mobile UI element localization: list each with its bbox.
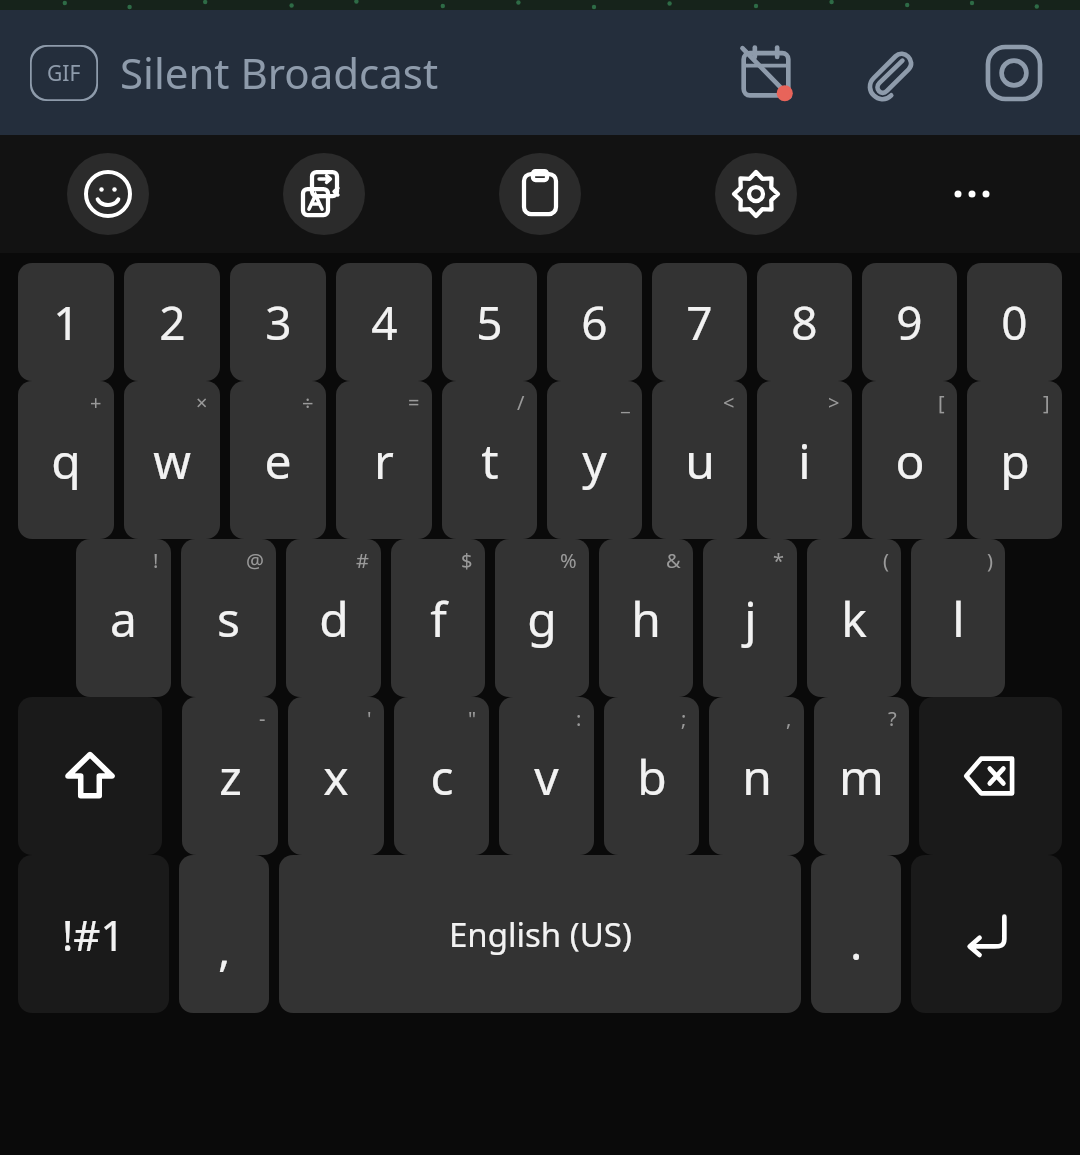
- button[interactable]: Clipboard: [499, 153, 581, 235]
- staticText: i: [798, 428, 811, 493]
- button[interactable]: 5: [442, 263, 537, 381]
- staticText: ,: [218, 917, 231, 980]
- staticText: r: [374, 428, 394, 493]
- button[interactable]: More options: [931, 153, 1013, 235]
- button[interactable]: i: [757, 381, 852, 539]
- staticText: 6: [581, 291, 608, 354]
- staticText: 1: [53, 291, 80, 354]
- button[interactable]: Emoji: [67, 153, 149, 235]
- button[interactable]: 1: [18, 263, 114, 381]
- button[interactable]: q: [18, 381, 114, 539]
- staticText: $: [461, 547, 473, 574]
- button[interactable]: Attach: [852, 35, 928, 111]
- button[interactable]: Settings: [715, 153, 797, 235]
- button[interactable]: g: [495, 539, 589, 697]
- button[interactable]: r: [336, 381, 432, 539]
- staticText: /: [517, 389, 525, 416]
- button[interactable]: v: [499, 697, 594, 855]
- staticText: ;: [681, 705, 687, 732]
- staticText: c: [430, 744, 454, 809]
- staticText: #: [356, 547, 369, 574]
- staticText: ": [468, 705, 477, 732]
- staticText: b: [637, 744, 667, 809]
- button[interactable]: z: [182, 697, 278, 855]
- staticText: n: [742, 744, 772, 809]
- staticText: 0: [1001, 291, 1028, 354]
- button[interactable]: x: [288, 697, 384, 855]
- button[interactable]: Camera: [976, 35, 1052, 111]
- button[interactable]: Shift: [18, 697, 162, 855]
- button[interactable]: 9: [862, 263, 957, 381]
- staticText: >: [828, 389, 840, 416]
- button[interactable]: j: [703, 539, 797, 697]
- button[interactable]: s: [181, 539, 276, 697]
- button[interactable]: l: [911, 539, 1005, 697]
- staticText: 5: [476, 291, 503, 354]
- staticText: j: [744, 586, 757, 651]
- button[interactable]: w: [124, 381, 220, 539]
- staticText: [: [938, 389, 945, 416]
- button[interactable]: ,: [179, 855, 269, 1013]
- button[interactable]: GIF: [30, 45, 98, 101]
- staticText: 8: [791, 291, 818, 354]
- staticText: y: [582, 428, 607, 493]
- staticText: English (US): [449, 912, 632, 957]
- button[interactable]: Backspace: [919, 697, 1062, 855]
- staticText: @: [246, 547, 264, 574]
- staticText: m: [839, 744, 884, 809]
- staticText: e: [264, 428, 292, 493]
- button[interactable]: o: [862, 381, 957, 539]
- staticText: o: [895, 428, 925, 493]
- staticText: w: [153, 428, 191, 493]
- staticText: ]: [1043, 389, 1050, 416]
- button[interactable]: Schedule send off: [728, 35, 804, 111]
- staticText: k: [841, 586, 867, 651]
- staticText: t: [481, 428, 499, 493]
- button[interactable]: f: [391, 539, 485, 697]
- button[interactable]: u: [652, 381, 747, 539]
- button[interactable]: b: [604, 697, 699, 855]
- button[interactable]: Enter: [911, 855, 1062, 1013]
- staticText: &: [666, 547, 681, 574]
- button[interactable]: t: [442, 381, 537, 539]
- button[interactable]: n: [709, 697, 804, 855]
- button[interactable]: !#1: [18, 855, 169, 1013]
- staticText: g: [527, 586, 557, 651]
- staticText: GIF: [47, 59, 81, 88]
- staticText: ×: [196, 389, 208, 416]
- button[interactable]: 3: [230, 263, 326, 381]
- button[interactable]: Translate: [283, 153, 365, 235]
- button[interactable]: 6: [547, 263, 642, 381]
- button[interactable]: English (US): [279, 855, 801, 1013]
- staticText: l: [952, 586, 965, 651]
- button[interactable]: a: [76, 539, 171, 697]
- staticText: *: [773, 547, 785, 574]
- staticText: 2: [159, 291, 186, 354]
- button[interactable]: e: [230, 381, 326, 539]
- button[interactable]: k: [807, 539, 901, 697]
- staticText: ÷: [302, 389, 314, 416]
- staticText: +: [90, 389, 102, 416]
- button[interactable]: 4: [336, 263, 432, 381]
- button[interactable]: .: [811, 855, 901, 1013]
- staticText: ': [367, 705, 372, 732]
- staticText: s: [217, 586, 240, 651]
- button[interactable]: p: [967, 381, 1062, 539]
- staticText: .: [850, 911, 863, 974]
- staticText: q: [51, 428, 81, 493]
- staticText: h: [631, 586, 661, 651]
- staticText: u: [685, 428, 715, 493]
- button[interactable]: 7: [652, 263, 747, 381]
- button[interactable]: y: [547, 381, 642, 539]
- button[interactable]: h: [599, 539, 693, 697]
- button[interactable]: 0: [967, 263, 1062, 381]
- staticText: _: [621, 389, 630, 416]
- staticText: d: [319, 586, 349, 651]
- staticText: !: [153, 547, 159, 574]
- button[interactable]: c: [394, 697, 489, 855]
- button[interactable]: 8: [757, 263, 852, 381]
- button[interactable]: d: [286, 539, 381, 697]
- staticText: !#1: [62, 906, 125, 963]
- button[interactable]: m: [814, 697, 909, 855]
- button[interactable]: 2: [124, 263, 220, 381]
